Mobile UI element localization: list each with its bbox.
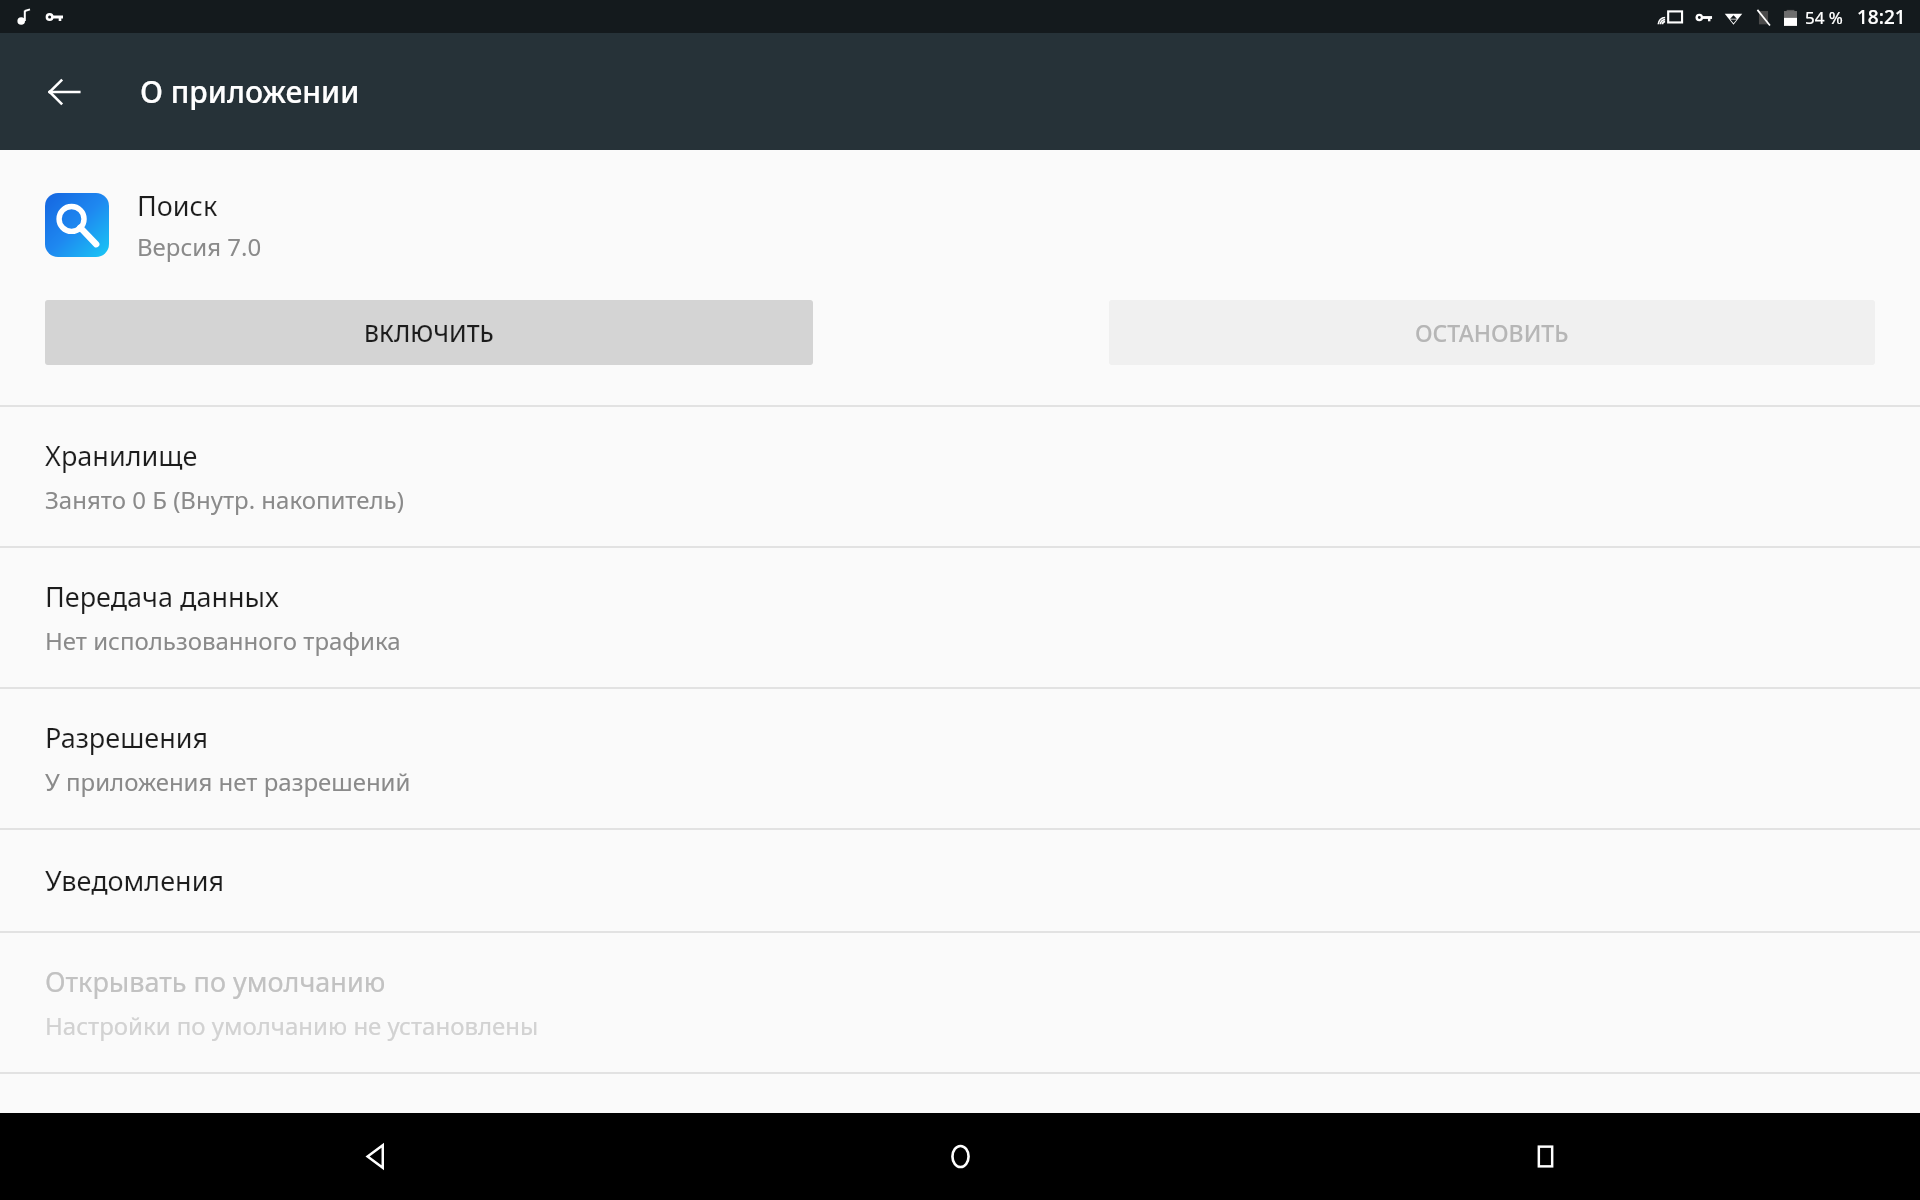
staticText: У приложения нет разрешений [45, 765, 411, 798]
staticText: Версия 7.0 [137, 230, 262, 263]
staticText: Занято 0 Б (Внутр. накопитель) [45, 483, 404, 516]
staticText: Хранилище [45, 437, 198, 474]
staticText: Открывать по умолчанию [45, 963, 386, 1000]
button[interactable]: Назад [330, 1113, 420, 1200]
button[interactable]: Хранилище [0, 407, 1920, 546]
staticText: 54 % [1805, 6, 1843, 29]
button[interactable]: Уведомления [0, 830, 1920, 931]
button[interactable]: ВКЛЮЧИТЬ [45, 300, 813, 365]
staticText: Разрешения [45, 719, 209, 756]
button[interactable]: Назад [24, 52, 104, 132]
staticText: ОСТАНОВИТЬ [1415, 317, 1569, 348]
button[interactable]: Открывать по умолчанию [0, 933, 1920, 1072]
button[interactable]: Разрешения [0, 689, 1920, 828]
button[interactable]: Передача данных [0, 548, 1920, 687]
staticText: ВКЛЮЧИТЬ [364, 317, 494, 348]
button[interactable]: Главный экран [915, 1113, 1005, 1200]
staticText: 18:21 [1857, 4, 1906, 30]
staticText: О приложении [140, 71, 360, 112]
button[interactable]: Обзор [1500, 1113, 1590, 1200]
button[interactable]: ОСТАНОВИТЬ [1109, 300, 1875, 365]
staticText: Передача данных [45, 578, 279, 615]
staticText: Нет использованного трафика [45, 624, 401, 657]
staticText: Уведомления [45, 862, 225, 899]
staticText: Настройки по умолчанию не установлены [45, 1009, 539, 1042]
staticText: Поиск [137, 187, 218, 224]
